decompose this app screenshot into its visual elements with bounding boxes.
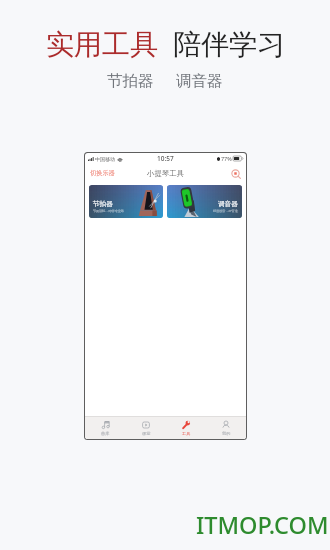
staticText: 调音器 [176,71,223,91]
staticText: 切换乐器 [90,169,115,177]
button[interactable]: 我的 [206,417,246,439]
button[interactable]: 切换乐器 [90,169,115,177]
button[interactable]: 曲库 [85,417,126,439]
staticText: 实用工具 [46,27,158,62]
staticText: 我的 [222,431,231,436]
staticText: 陪伴学习 [173,27,285,62]
staticText: 小提琴工具 [147,169,184,178]
staticText: 工具 [182,431,191,436]
staticText: 77% [221,155,232,162]
staticText: 节拍器 [107,71,154,91]
button[interactable]: 调音器 [167,185,242,218]
staticText: ITMOP.COM [196,509,329,541]
staticText: 节奏训练，陪伴专业路 [93,209,124,213]
staticText: 节拍器 [93,200,113,208]
staticText: 精准校音，好音准 [213,209,238,213]
staticText: 中国移动 [95,156,115,162]
staticText: 曲库 [101,431,110,436]
staticText: 10:57 [157,154,174,163]
button[interactable]: 搜索 [230,168,241,179]
button[interactable]: 节拍器 [89,185,163,218]
staticText: 课堂 [142,431,151,436]
button[interactable]: 课堂 [126,417,166,439]
button[interactable]: 工具 [166,417,206,439]
staticText: 调音器 [218,200,238,208]
